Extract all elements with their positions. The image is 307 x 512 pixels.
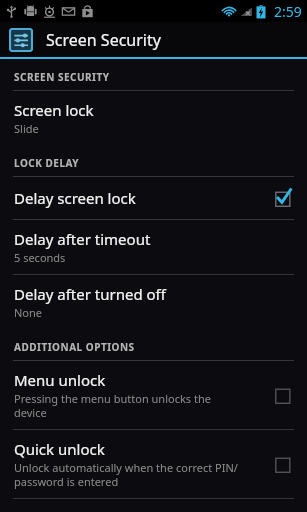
- button[interactable]: Disabled checkbox: [271, 383, 295, 407]
- staticText: Slide: [14, 121, 39, 136]
- staticText: Menu unlock: [14, 370, 106, 390]
- staticText: 2:59: [274, 2, 302, 21]
- button[interactable]: Disabled checkbox: [271, 452, 295, 476]
- staticText: SCREEN SECURITY: [14, 70, 110, 84]
- button[interactable]: Delay after turned off: [0, 275, 307, 329]
- staticText: 5 seconds: [14, 250, 66, 265]
- button[interactable]: Delay after timeout: [0, 220, 307, 274]
- staticText: None: [14, 305, 43, 320]
- button[interactable]: Screen lock: [0, 91, 307, 145]
- staticText: LOCK DELAY: [14, 156, 80, 170]
- staticText: Delay after turned off: [14, 284, 166, 304]
- staticText: ADDITIONAL OPTIONS: [14, 340, 135, 354]
- staticText: Pressing the menu button unlocks the dev…: [14, 391, 211, 420]
- button[interactable]: Screen Security: [0, 22, 307, 57]
- other: Screen Security: [9, 28, 33, 52]
- staticText: Screen Security: [46, 29, 161, 51]
- button[interactable]: Menu unlock: [0, 361, 307, 429]
- staticText: Quick unlock: [14, 439, 105, 459]
- staticText: Screen lock: [14, 100, 94, 120]
- button[interactable]: Enabled checkbox: [271, 186, 295, 210]
- staticText: Unlock automatically when the correct PI…: [14, 460, 238, 489]
- button[interactable]: Delay screen lock: [0, 177, 307, 219]
- staticText: Delay screen lock: [14, 188, 136, 208]
- button[interactable]: Quick unlock: [0, 430, 307, 498]
- staticText: Delay after timeout: [14, 229, 151, 249]
